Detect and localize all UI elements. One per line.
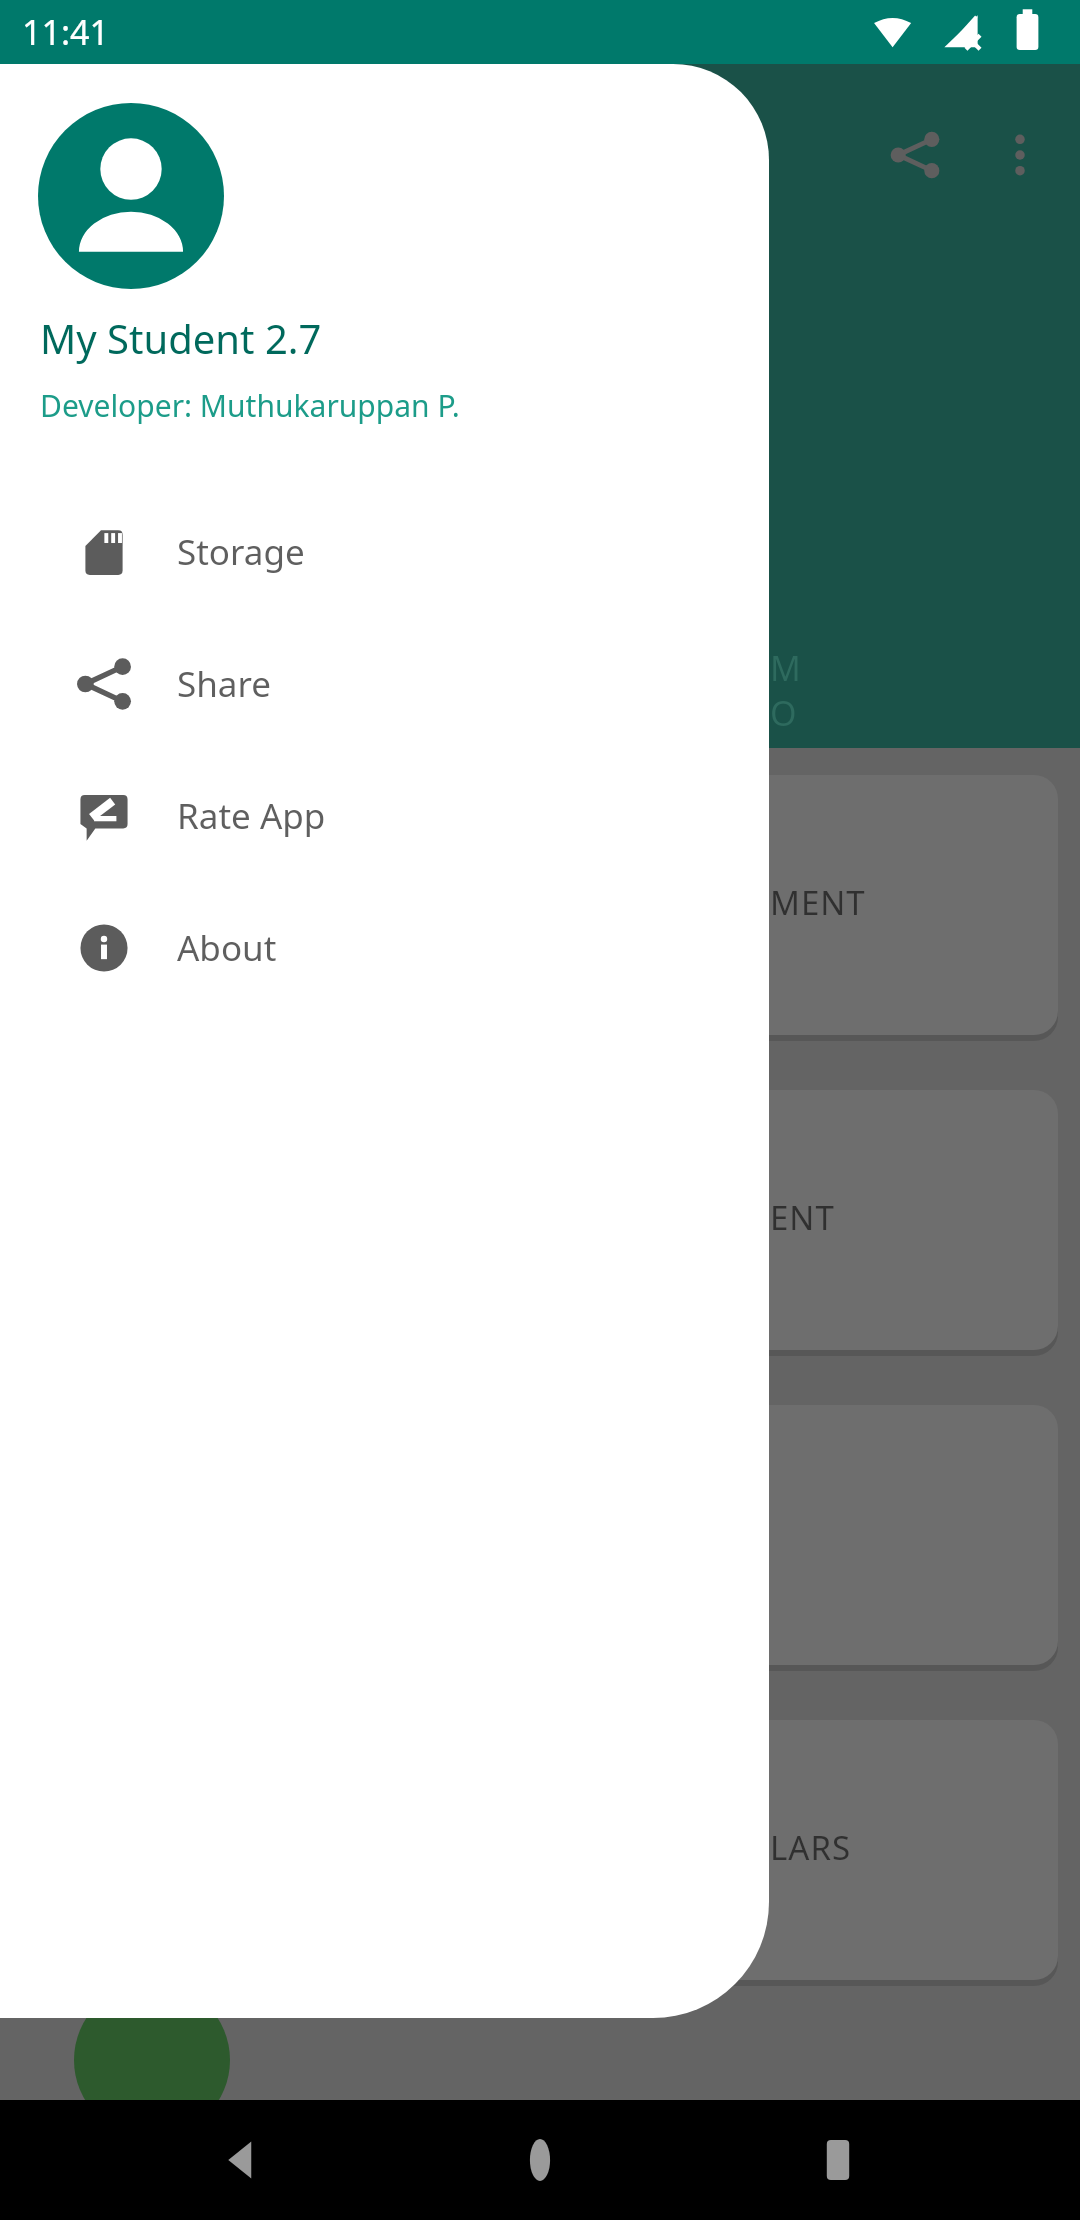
staticText: M: [770, 645, 801, 691]
staticText: About: [177, 924, 277, 972]
staticText: MENT: [770, 880, 866, 925]
button[interactable]: Share: [860, 100, 970, 210]
staticText: Share: [177, 660, 271, 708]
staticText: ENT: [770, 1195, 835, 1240]
staticText: My Student 2.7: [40, 311, 322, 365]
staticText: 11:41: [22, 9, 109, 55]
button[interactable]: Share: [0, 618, 769, 750]
button[interactable]: Rate App: [0, 750, 769, 882]
button[interactable]: Home: [485, 2105, 595, 2215]
staticText: Storage: [177, 528, 305, 576]
staticText: Developer: Muthukaruppan P.: [40, 385, 460, 426]
button[interactable]: About: [0, 882, 769, 1014]
staticText: Rate App: [177, 792, 326, 840]
button[interactable]: Storage: [0, 486, 769, 618]
button[interactable]: More options: [965, 100, 1075, 210]
button[interactable]: Back: [188, 2105, 298, 2215]
button[interactable]: Recent apps: [783, 2105, 893, 2215]
staticText: LARS: [770, 1825, 852, 1870]
staticText: O: [770, 690, 797, 736]
